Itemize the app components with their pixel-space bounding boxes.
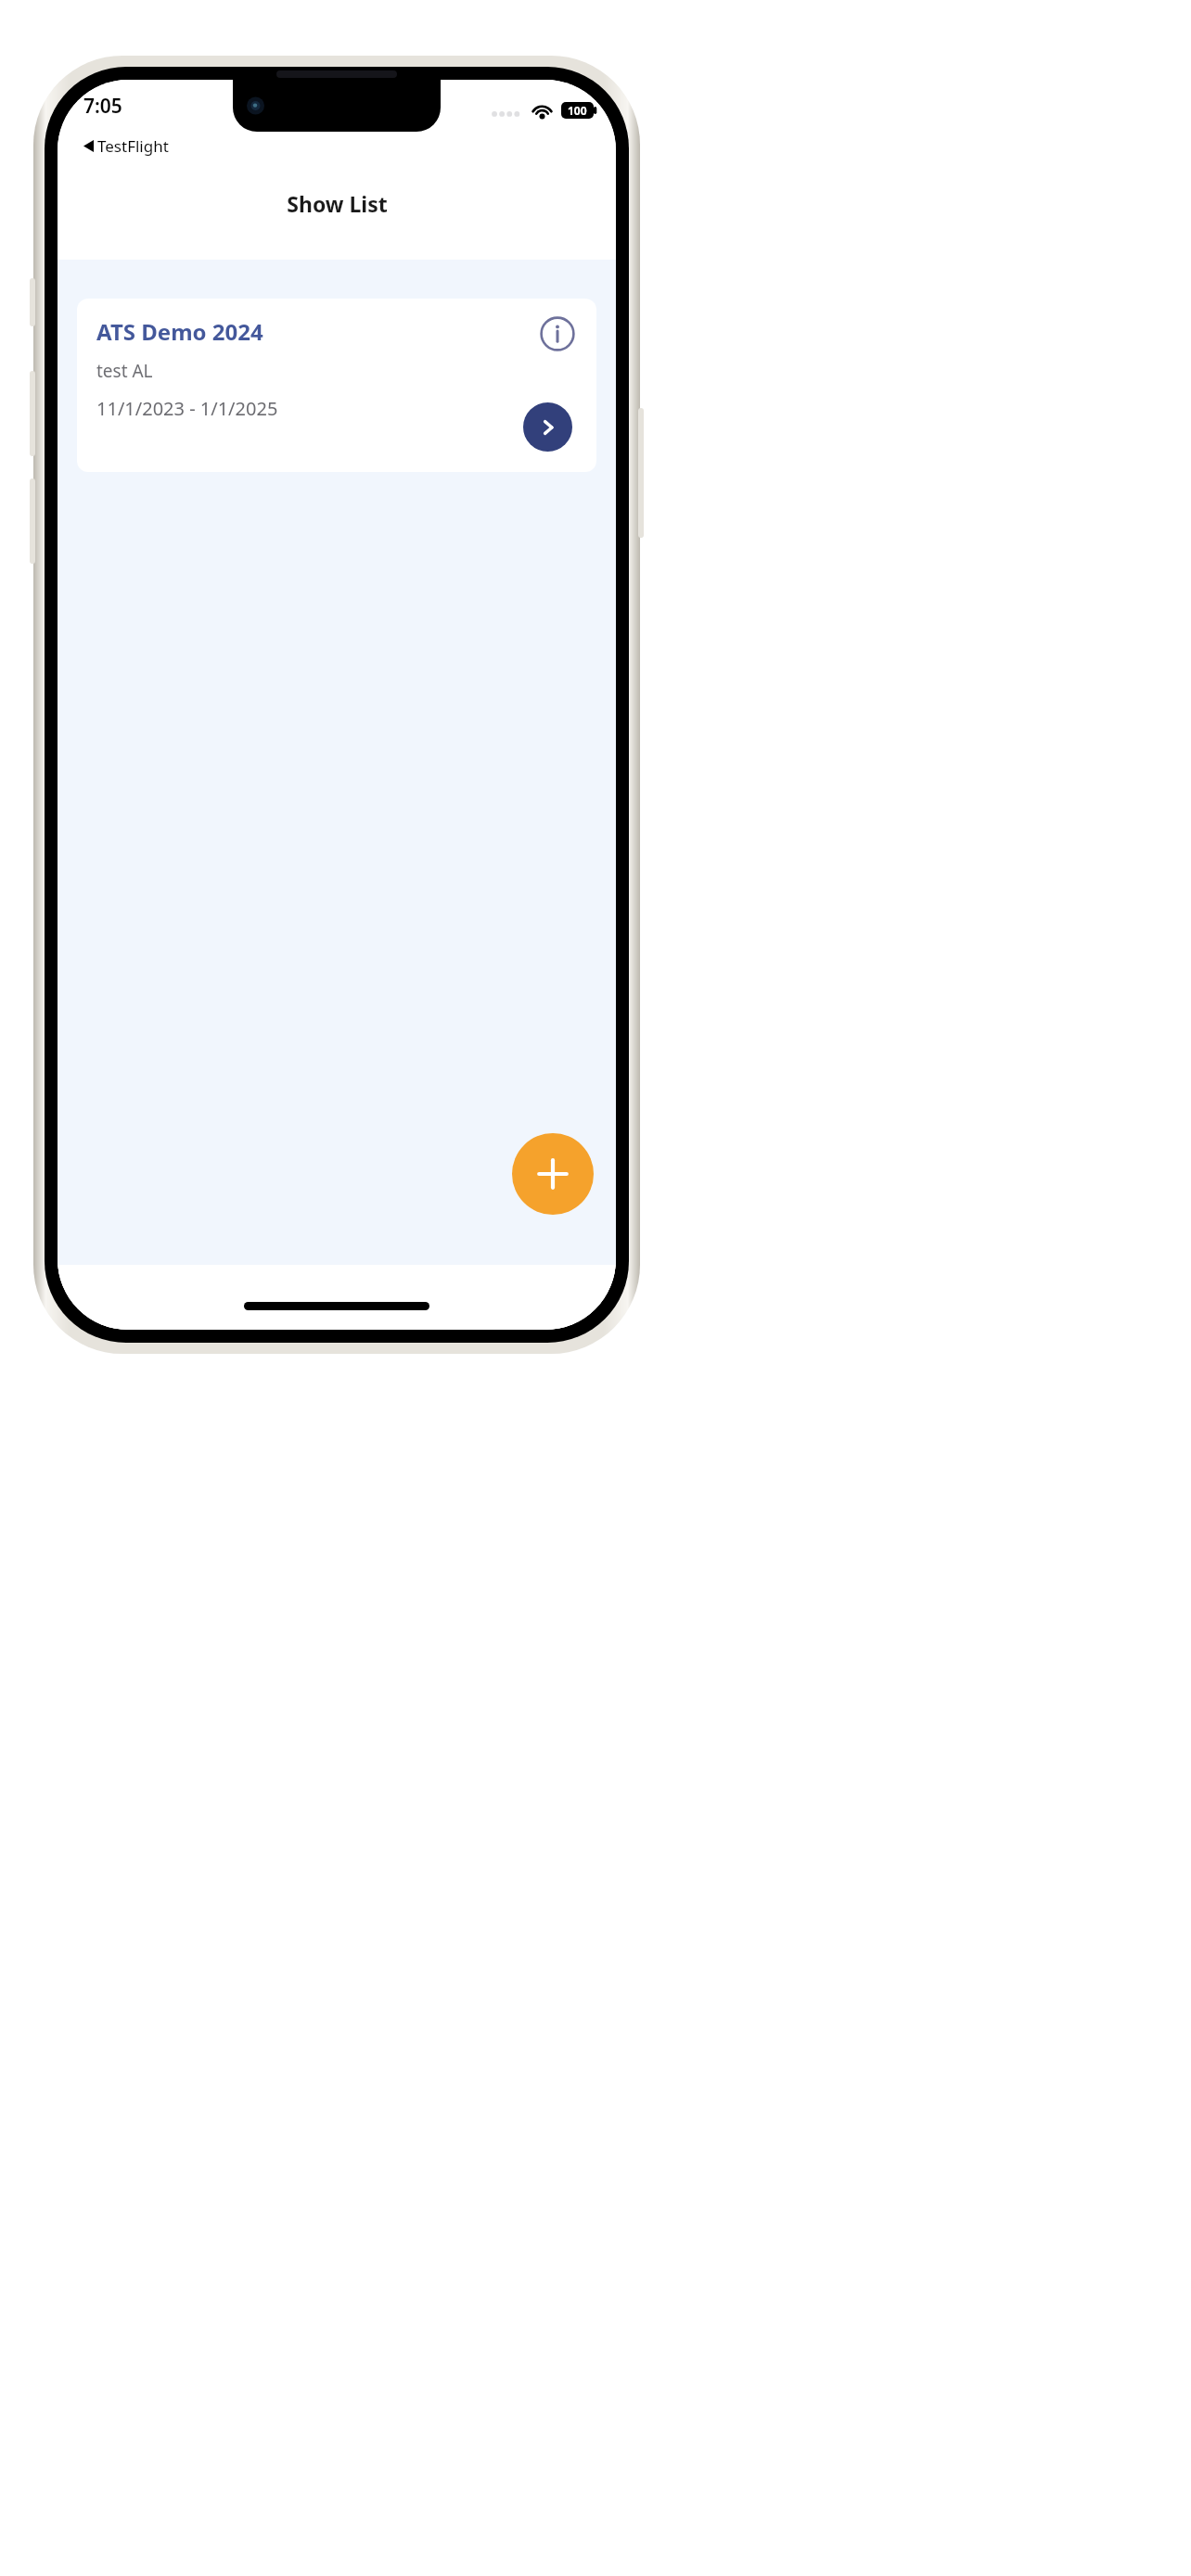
- staticText: Show List: [287, 189, 388, 218]
- button[interactable]: Add show: [512, 1133, 594, 1215]
- button[interactable]: Open show: [523, 402, 572, 452]
- button[interactable]: Show information: [537, 313, 578, 354]
- button[interactable]: ATS Demo 2024: [77, 299, 596, 472]
- staticText: 7:05: [83, 93, 122, 120]
- staticText: ATS Demo 2024: [96, 316, 263, 347]
- staticText: TestFlight: [97, 135, 169, 157]
- staticText: 11/1/2023 - 1/1/2025: [96, 396, 278, 421]
- staticText: test AL: [96, 359, 153, 383]
- button[interactable]: TestFlight: [83, 134, 169, 158]
- staticText: 100: [568, 103, 587, 118]
